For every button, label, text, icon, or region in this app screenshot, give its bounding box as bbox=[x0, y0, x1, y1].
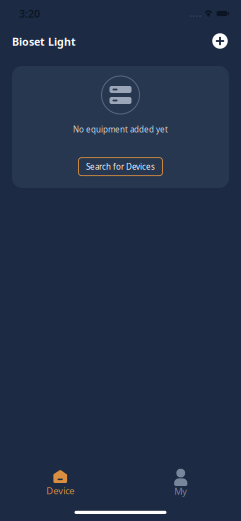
staticText: No equipment added yet bbox=[73, 124, 168, 135]
button[interactable]: Device bbox=[0, 469, 120, 500]
staticText: 3:20 bbox=[19, 6, 40, 21]
button[interactable]: My bbox=[120, 469, 241, 500]
button[interactable]: Search for Devices bbox=[78, 158, 162, 176]
staticText: Bioset Light bbox=[12, 34, 76, 49]
staticText: My bbox=[174, 485, 187, 497]
button[interactable]: Add device bbox=[208, 29, 232, 53]
staticText: Search for Devices bbox=[86, 161, 155, 172]
staticText: Device bbox=[46, 484, 74, 497]
